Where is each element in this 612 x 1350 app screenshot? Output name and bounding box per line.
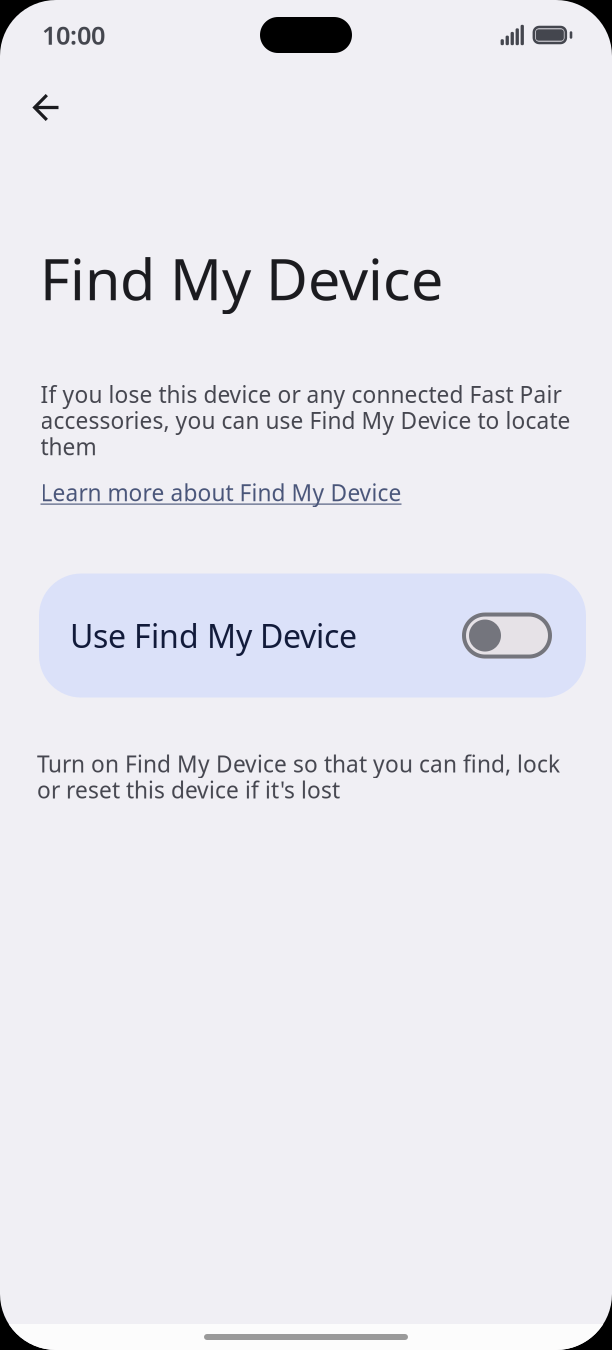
staticText: Turn on Find My Device so that you can f…: [37, 748, 560, 805]
button[interactable]: Back: [18, 79, 74, 135]
staticText: Learn more about Find My Device: [40, 477, 401, 507]
button[interactable]: Use Find My Device: [39, 573, 586, 697]
button[interactable]: Learn more about Find My Device: [40, 461, 401, 507]
staticText: Find My Device: [40, 240, 443, 316]
staticText: 10:00: [42, 18, 105, 52]
staticText: Use Find My Device: [70, 614, 357, 657]
staticText: If you lose this device or any connected…: [40, 379, 570, 461]
